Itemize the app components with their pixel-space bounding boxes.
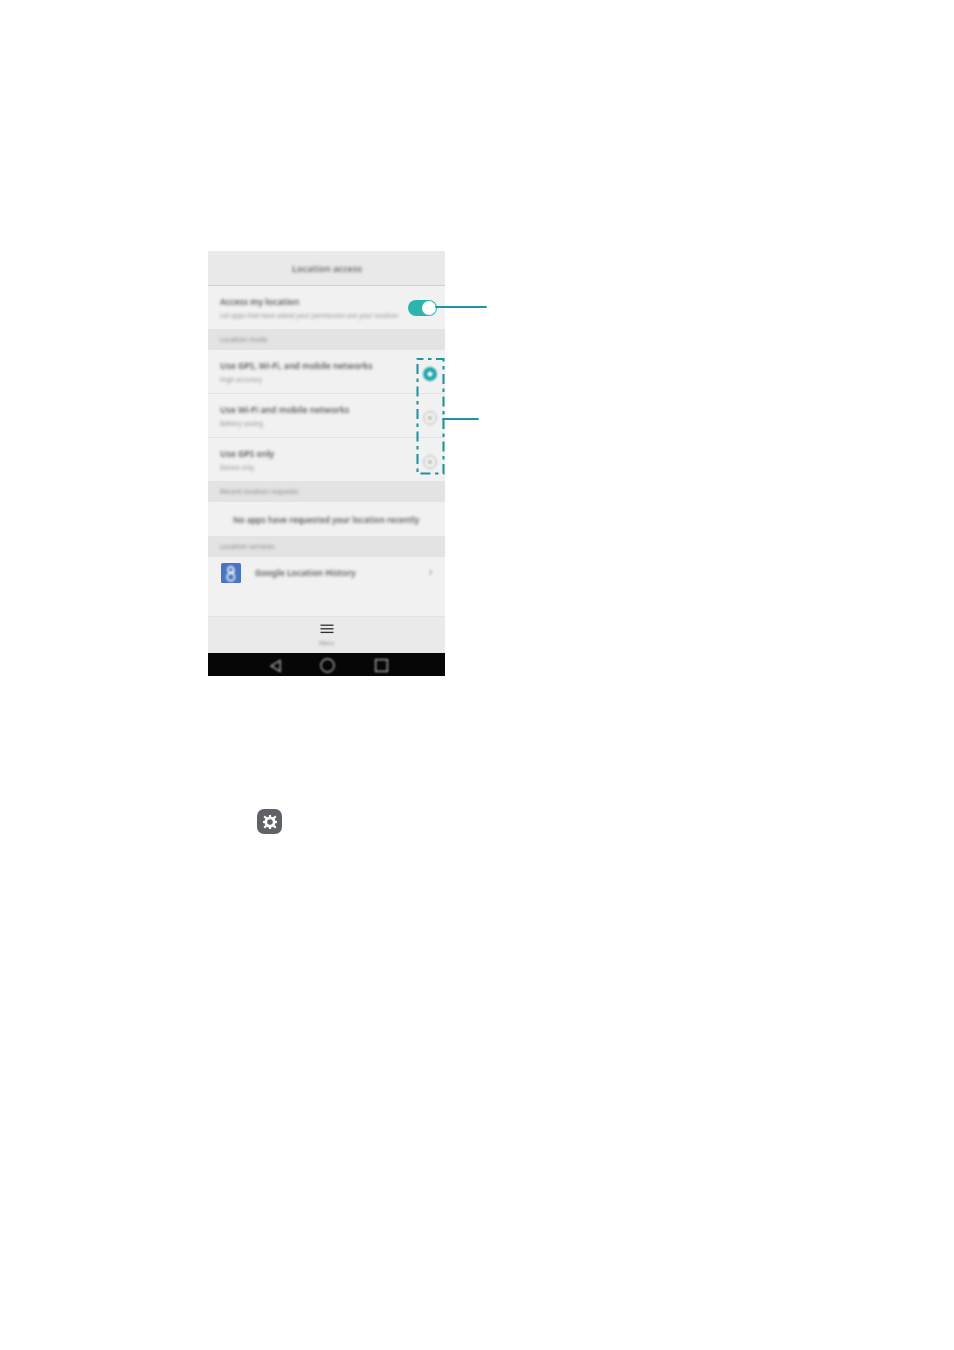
button[interactable]: Menu <box>208 617 445 653</box>
button[interactable]: Access my location <box>208 286 445 329</box>
button[interactable]: Home <box>320 658 335 673</box>
staticText: Use GPS only <box>220 448 275 460</box>
staticText: Location services <box>220 542 275 551</box>
staticText: Menu <box>319 639 335 647</box>
button[interactable]: Use GPS, Wi-Fi, and mobile networks <box>208 350 445 393</box>
button[interactable]: Location mode option <box>421 453 439 471</box>
staticText: Use GPS, Wi-Fi, and mobile networks <box>220 360 373 372</box>
staticText: Recent location requests <box>220 487 299 496</box>
staticText: Battery saving <box>220 419 263 428</box>
button[interactable]: Recents <box>375 659 388 672</box>
staticText: Use Wi-Fi and mobile networks <box>220 404 350 416</box>
staticText: High accuracy <box>220 375 263 384</box>
button[interactable]: Access my location toggle <box>408 300 437 316</box>
button[interactable]: Google Location History <box>208 557 445 588</box>
staticText: Location access <box>292 262 362 275</box>
button[interactable]: Location mode option <box>421 365 439 383</box>
button[interactable]: Settings <box>257 809 282 834</box>
staticText: Let apps that have asked your permission… <box>220 311 408 320</box>
button[interactable]: Use Wi-Fi and mobile networks <box>208 394 445 437</box>
staticText: Location mode <box>220 335 268 344</box>
other: Menu <box>320 624 334 634</box>
staticText: Device only <box>220 463 255 472</box>
staticText: Google Location History <box>255 567 356 579</box>
staticText: No apps have requested your location rec… <box>233 514 420 525</box>
button[interactable]: Location mode option <box>421 409 439 427</box>
button[interactable]: Use GPS only <box>208 438 445 481</box>
staticText: Access my location <box>220 296 300 308</box>
button[interactable]: Back <box>269 659 283 673</box>
